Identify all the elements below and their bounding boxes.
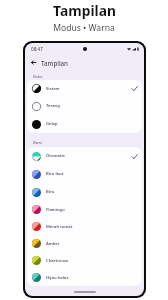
button[interactable]: Merah tomat: [27, 218, 142, 235]
button[interactable]: Hijau halus: [27, 269, 142, 286]
staticText: Chartreuse: [46, 258, 69, 264]
button[interactable]: Sistem: [27, 80, 142, 97]
staticText: Amber: [46, 241, 60, 247]
button[interactable]: Amber: [27, 235, 142, 252]
other: Selected: [131, 153, 138, 160]
staticText: Merah tomat: [46, 224, 73, 230]
button[interactable]: Gelap: [27, 115, 142, 133]
staticText: Modus • Warna: [53, 22, 115, 34]
button[interactable]: Flamingo: [27, 201, 142, 218]
button[interactable]: Biru: [27, 183, 142, 201]
other: Selected: [131, 85, 138, 92]
button[interactable]: Chartreuse: [27, 252, 142, 269]
staticText: Tampilan: [41, 59, 68, 67]
staticText: Warna: [33, 141, 43, 145]
staticText: Biru laut: [46, 171, 64, 177]
staticText: Sistem: [46, 86, 60, 92]
staticText: Flamingo: [46, 207, 65, 213]
staticText: Hijau halus: [46, 275, 69, 281]
button[interactable]: Terang: [27, 97, 142, 115]
staticText: 08:47: [31, 46, 43, 52]
staticText: Terang: [46, 103, 60, 109]
button[interactable]: Back: [28, 57, 39, 68]
staticText: Gelap: [46, 121, 58, 127]
staticText: Tampilan: [53, 1, 116, 20]
staticText: Otomatis: [46, 153, 65, 159]
button[interactable]: Otomatis: [27, 147, 142, 165]
staticText: Modus: [33, 75, 43, 79]
button[interactable]: Biru laut: [27, 165, 142, 183]
staticText: Biru: [46, 189, 55, 195]
